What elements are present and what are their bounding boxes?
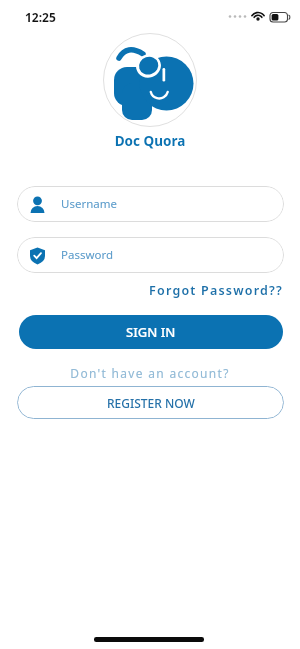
button[interactable]: SIGN IN [19,315,283,349]
button[interactable]: Password [17,237,284,273]
button[interactable]: REGISTER NOW [17,386,284,419]
button[interactable]: Forgot Password?? [0,282,283,299]
staticText: 12:25 [25,9,56,25]
staticText: Don't have an account? [0,365,300,381]
staticText: SIGN IN [126,323,176,341]
staticText: Doc Quora [0,132,300,150]
button[interactable]: Username [17,186,284,222]
staticText: Username [61,196,117,212]
staticText: Password [61,247,114,263]
staticText: REGISTER NOW [107,395,195,411]
